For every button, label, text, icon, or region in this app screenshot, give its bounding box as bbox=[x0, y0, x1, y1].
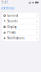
button[interactable]: General bbox=[2, 13, 39, 19]
button[interactable]: Notifications bbox=[2, 35, 39, 41]
button[interactable]: Settings bbox=[0, 5, 16, 11]
staticText: Settings bbox=[3, 6, 14, 10]
button[interactable]: Display bbox=[2, 24, 39, 30]
staticText: Notifications bbox=[7, 36, 24, 40]
staticText: Display bbox=[7, 25, 16, 29]
button[interactable]: Sounds bbox=[2, 19, 39, 24]
staticText: Privacy bbox=[7, 31, 15, 34]
staticText: 9:41 bbox=[2, 1, 9, 4]
staticText: Sounds bbox=[7, 19, 17, 23]
button[interactable]: Privacy bbox=[2, 30, 39, 35]
staticText: General bbox=[7, 14, 18, 17]
